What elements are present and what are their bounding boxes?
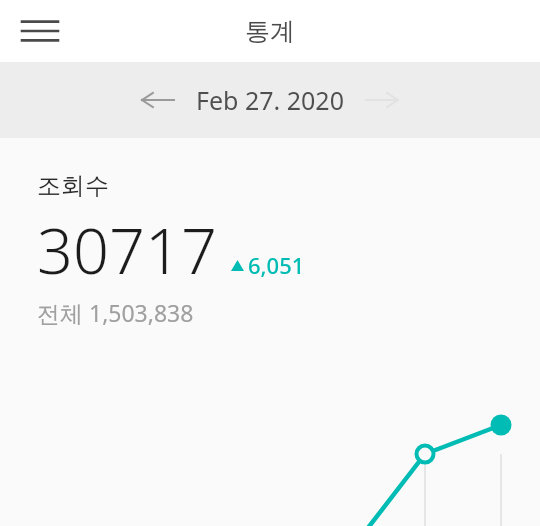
staticText: 6,051 [248,250,305,280]
button[interactable]: Previous day [134,76,182,124]
staticText: 전체 1,503,838 [37,297,194,328]
staticText: 조회수 [37,171,109,201]
staticText: 30717 [37,207,217,293]
button[interactable]: Open navigation menu [14,5,66,57]
button[interactable]: Feb 27. 2020 [196,83,344,117]
staticText: 통계 [245,16,295,47]
